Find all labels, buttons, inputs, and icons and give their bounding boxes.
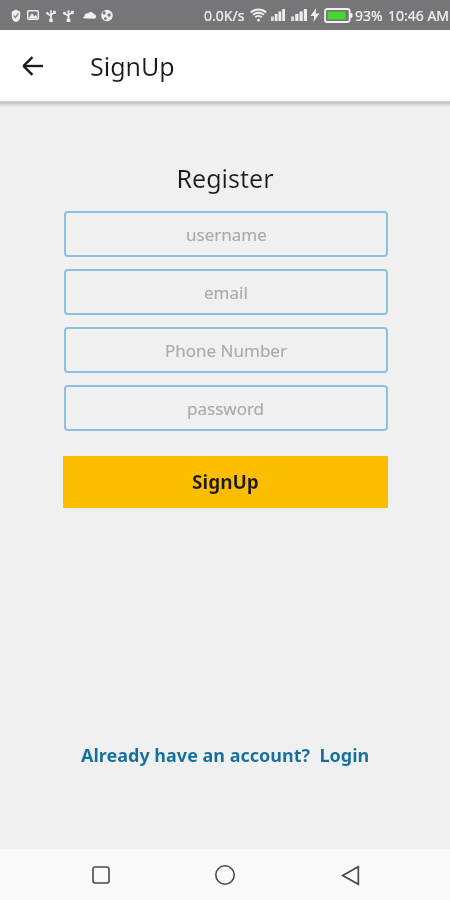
staticText: username bbox=[186, 223, 267, 246]
staticText: 0.0K/s bbox=[204, 6, 245, 25]
staticText: 10:46 AM bbox=[388, 6, 450, 25]
button[interactable]: username bbox=[64, 211, 388, 257]
staticText: Register bbox=[0, 161, 450, 195]
staticText: 93% bbox=[355, 6, 383, 25]
staticText: email bbox=[204, 281, 248, 304]
staticText: Already have an account? Login bbox=[81, 743, 370, 768]
button[interactable]: Phone Number bbox=[64, 327, 388, 373]
staticText: password bbox=[187, 397, 265, 420]
button[interactable]: Recents bbox=[77, 851, 125, 899]
button[interactable]: Back bbox=[17, 49, 51, 83]
staticText: SignUp bbox=[90, 49, 175, 83]
button[interactable]: Back bbox=[326, 851, 374, 899]
staticText: Phone Number bbox=[165, 339, 287, 362]
button[interactable]: Home bbox=[201, 851, 249, 899]
button[interactable]: email bbox=[64, 269, 388, 315]
staticText: SignUp bbox=[192, 469, 259, 495]
button[interactable]: Already have an account? Login bbox=[73, 735, 378, 776]
button[interactable]: password bbox=[64, 385, 388, 431]
button[interactable]: SignUp bbox=[63, 456, 388, 508]
